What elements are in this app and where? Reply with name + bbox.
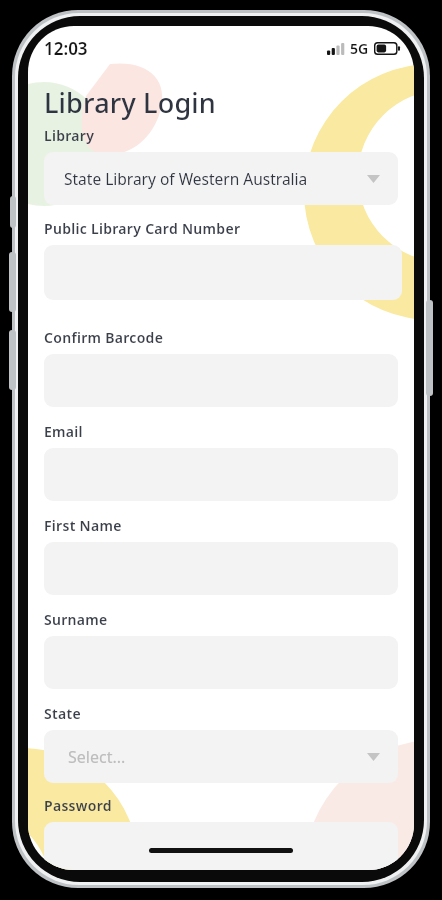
staticText: 5G xyxy=(350,39,369,58)
staticText: Email xyxy=(44,422,83,441)
button[interactable] xyxy=(44,822,398,870)
staticText: Surname xyxy=(44,610,108,629)
staticText: Confirm Barcode xyxy=(44,328,164,347)
button[interactable]: State dropdown xyxy=(44,730,398,783)
staticText: Select... xyxy=(68,746,126,768)
staticText: 12:03 xyxy=(44,37,88,60)
staticText: State Library of Western Australia xyxy=(64,168,308,189)
staticText: First Name xyxy=(44,516,122,535)
staticText: Library Login xyxy=(44,84,216,121)
staticText: State xyxy=(44,704,81,723)
staticText: Public Library Card Number xyxy=(44,219,241,238)
staticText: Password xyxy=(44,796,112,815)
button[interactable]: Library dropdown xyxy=(44,152,398,205)
staticText: Library xyxy=(44,126,95,145)
